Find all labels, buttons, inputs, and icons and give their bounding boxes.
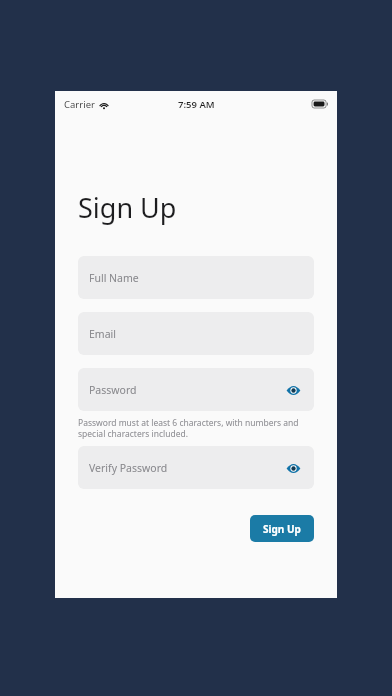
staticText: 7:59 AM — [178, 98, 215, 111]
button[interactable]: Verify Password — [78, 446, 314, 489]
staticText: Verify Password — [89, 461, 168, 475]
staticText: Password — [89, 383, 137, 397]
staticText: Email — [89, 327, 116, 341]
button[interactable]: Email — [78, 312, 314, 355]
staticText: Password must at least 6 characters, wit… — [78, 417, 315, 439]
staticText: Carrier — [64, 98, 95, 111]
staticText: Full Name — [89, 271, 139, 285]
button[interactable]: Show password — [282, 379, 304, 401]
staticText: Sign Up — [78, 189, 177, 226]
button[interactable]: Password — [78, 368, 314, 411]
button[interactable]: Full Name — [78, 256, 314, 299]
button[interactable]: Show password — [282, 457, 304, 479]
staticText: Sign Up — [263, 522, 301, 536]
button[interactable]: Sign Up — [250, 515, 314, 542]
